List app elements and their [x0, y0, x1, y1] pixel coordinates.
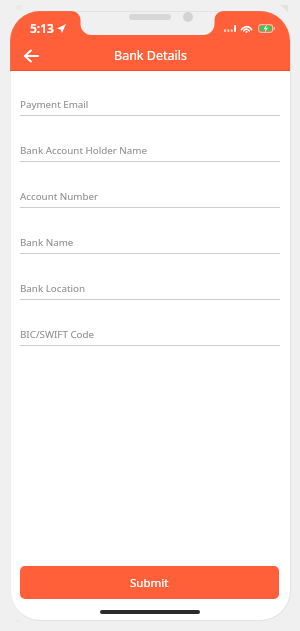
- staticText: Bank Account Holder Name: [20, 144, 147, 157]
- staticText: 5:13: [30, 20, 54, 36]
- button[interactable]: Back: [16, 41, 46, 71]
- staticText: Bank Location: [20, 282, 86, 295]
- staticText: Bank Name: [20, 236, 74, 249]
- staticText: Account Number: [20, 190, 99, 203]
- staticText: BIC/SWIFT Code: [20, 328, 95, 341]
- staticText: Bank Details: [114, 47, 187, 64]
- staticText: Submit: [130, 575, 169, 591]
- button[interactable]: Submit: [20, 566, 279, 599]
- staticText: Payment Email: [20, 98, 89, 111]
